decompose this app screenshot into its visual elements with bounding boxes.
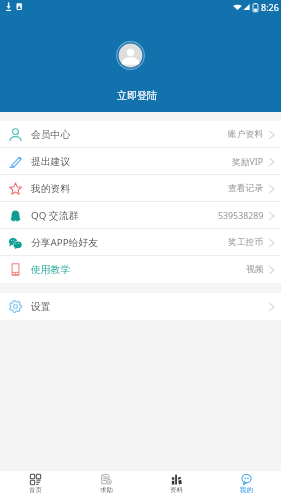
staticText: 8:26 xyxy=(261,1,279,13)
staticText: 539538289 xyxy=(218,210,264,222)
staticText: 分享APP给好友 xyxy=(31,236,99,249)
staticText: 视频 xyxy=(246,264,264,275)
button[interactable]: 首页 xyxy=(0,474,71,493)
staticText: 我的 xyxy=(240,486,253,493)
staticText: 资料 xyxy=(170,486,183,493)
staticText: 首页 xyxy=(29,486,42,493)
staticText: 使用教学 xyxy=(31,264,71,276)
staticText: 提出建议 xyxy=(31,156,71,168)
button[interactable]: 提出建议 xyxy=(0,148,281,175)
button[interactable]: 求助 xyxy=(71,474,141,493)
button[interactable]: 会员中心 xyxy=(0,121,281,148)
button[interactable]: QQ 交流群 xyxy=(0,202,281,229)
button[interactable]: 设置 xyxy=(0,293,281,320)
staticText: 账户资料 xyxy=(228,129,264,140)
staticText: 奖励VIP xyxy=(232,156,264,168)
staticText: 查看记录 xyxy=(228,183,264,194)
button[interactable]: 我的资料 xyxy=(0,175,281,202)
button[interactable]: 分享APP给好友 xyxy=(0,229,281,256)
button[interactable]: 资料 xyxy=(141,474,211,493)
button[interactable]: 我的 xyxy=(211,474,281,493)
staticText: 立即登陆 xyxy=(117,89,157,102)
staticText: 会员中心 xyxy=(31,129,71,141)
staticText: QQ 交流群 xyxy=(31,209,79,222)
staticText: 我的资料 xyxy=(31,183,71,195)
staticText: 设置 xyxy=(31,301,51,313)
button[interactable]: 使用教学 xyxy=(0,256,281,283)
staticText: 奖工控币 xyxy=(228,237,264,248)
staticText: 求助 xyxy=(100,486,113,493)
